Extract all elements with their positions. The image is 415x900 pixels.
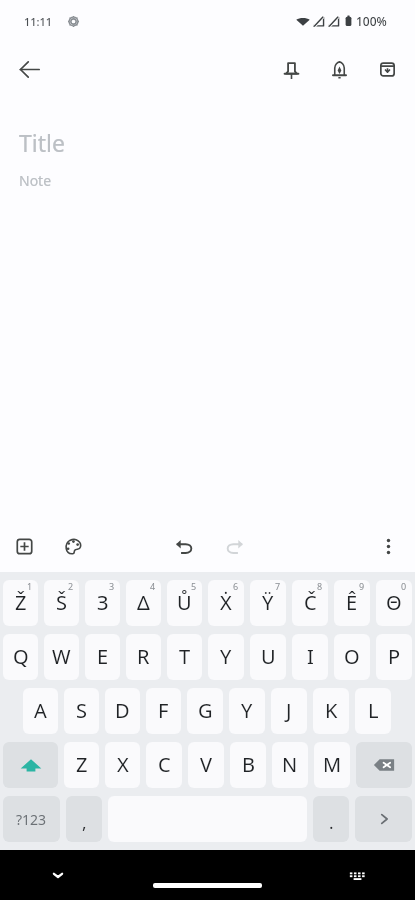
button[interactable]: Z [64, 742, 99, 788]
button[interactable]: O [334, 634, 370, 680]
staticText: Δ [137, 589, 150, 616]
staticText: Ž [15, 589, 27, 616]
staticText: 100% [356, 13, 387, 29]
button[interactable]: G [187, 688, 223, 734]
staticText: Č [304, 589, 317, 616]
staticText: Ê [346, 589, 358, 616]
button[interactable]: , [66, 796, 102, 842]
button[interactable]: Y [229, 688, 265, 734]
button[interactable]: I [292, 634, 328, 680]
button[interactable]: A [23, 688, 58, 734]
staticText: Y [220, 643, 232, 670]
button[interactable]: Hide keyboard [45, 862, 71, 888]
button[interactable]: Redo [210, 522, 258, 570]
staticText: . [329, 811, 334, 834]
staticText: M [323, 751, 342, 778]
button[interactable]: Y [208, 634, 244, 680]
button[interactable]: Ẋ [208, 580, 244, 626]
staticText: 4 [150, 580, 156, 592]
button[interactable]: L [355, 688, 391, 734]
staticText: Θ [386, 589, 402, 616]
button[interactable]: C [146, 742, 182, 788]
button[interactable]: Θ [376, 580, 412, 626]
staticText: , [82, 811, 87, 834]
button[interactable]: R [126, 634, 161, 680]
staticText: R [137, 643, 150, 670]
staticText: 3 [109, 580, 115, 592]
button[interactable]: Pin note [267, 45, 315, 93]
staticText: 8 [317, 580, 323, 592]
button[interactable]: F [146, 688, 181, 734]
button[interactable]: Undo [160, 522, 208, 570]
staticText: C [158, 751, 171, 778]
button[interactable]: S [64, 688, 99, 734]
staticText: 5 [191, 580, 197, 592]
staticText: X [117, 751, 129, 778]
staticText: P [388, 643, 401, 670]
staticText: S [76, 697, 87, 724]
button[interactable]: T [167, 634, 202, 680]
button[interactable]: Change colour [48, 522, 96, 570]
staticText: 6 [233, 580, 239, 592]
button[interactable]: V [188, 742, 224, 788]
staticText: 7 [275, 580, 281, 592]
button[interactable]: Ê [334, 580, 370, 626]
button[interactable]: W [44, 634, 79, 680]
staticText: J [286, 697, 292, 724]
staticText: Y [241, 697, 253, 724]
button[interactable]: Š [44, 580, 79, 626]
button[interactable]: X [105, 742, 140, 788]
button[interactable]: U [250, 634, 286, 680]
staticText: E [97, 643, 109, 670]
staticText: Ÿ [262, 589, 274, 616]
button[interactable]: N [272, 742, 308, 788]
button[interactable]: D [105, 688, 140, 734]
button[interactable]: Reminder [315, 45, 363, 93]
button[interactable]: З [85, 580, 120, 626]
button[interactable]: Ÿ [250, 580, 286, 626]
button[interactable]: B [230, 742, 266, 788]
staticText: 2 [68, 580, 74, 592]
staticText: L [368, 697, 379, 724]
button[interactable]: Ž [3, 580, 38, 626]
staticText: V [200, 751, 212, 778]
button[interactable]: Ů [167, 580, 202, 626]
button[interactable]: ?123 [3, 796, 60, 842]
staticText: G [198, 697, 213, 724]
button[interactable]: Add attachment [0, 522, 48, 570]
staticText: Š [56, 589, 67, 616]
button[interactable]: J [271, 688, 307, 734]
staticText: 1 [27, 580, 33, 592]
staticText: ?123 [16, 810, 47, 829]
button[interactable]: Navigate back [5, 45, 53, 93]
staticText: U [261, 643, 276, 670]
staticText: K [325, 697, 338, 724]
staticText: 0 [401, 580, 407, 592]
staticText: I [307, 643, 314, 670]
staticText: Z [76, 751, 88, 778]
button[interactable]: Shift [3, 742, 58, 788]
button[interactable]: . [313, 796, 349, 842]
button[interactable]: K [313, 688, 349, 734]
button[interactable]: Q [3, 634, 38, 680]
button[interactable]: Č [292, 580, 328, 626]
staticText: D [115, 697, 130, 724]
button[interactable]: M [314, 742, 350, 788]
staticText: Ů [177, 589, 192, 616]
staticText: O [344, 643, 360, 670]
staticText: A [34, 697, 47, 724]
button[interactable]: Backspace [356, 742, 412, 788]
staticText: Ẋ [220, 589, 232, 616]
staticText: 9 [359, 580, 365, 592]
staticText: N [282, 751, 298, 778]
button[interactable]: More options [364, 522, 412, 570]
button[interactable]: Switch keyboard [344, 862, 370, 888]
button[interactable]: Archive [363, 45, 411, 93]
button[interactable]: Δ [126, 580, 161, 626]
button[interactable]: Enter [355, 796, 412, 842]
button[interactable]: P [376, 634, 412, 680]
staticText: F [158, 697, 169, 724]
button[interactable]: E [85, 634, 120, 680]
staticText: Note [19, 171, 52, 190]
